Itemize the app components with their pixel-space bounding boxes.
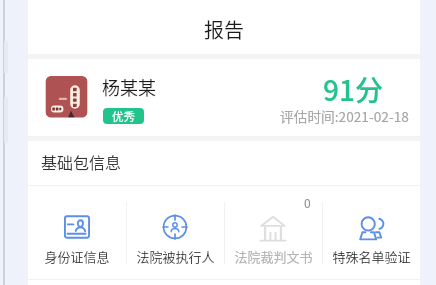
button[interactable]: 法院裁判文书: [224, 186, 322, 279]
staticText: 特殊名单验证: [332, 247, 411, 266]
staticText: 0: [304, 194, 311, 211]
staticText: 基础包信息: [41, 150, 122, 173]
staticText: 杨某某: [102, 74, 156, 100]
staticText: 91分: [323, 69, 383, 110]
staticText: 法院被执行人: [136, 247, 215, 266]
staticText: 法院裁判文书: [234, 247, 313, 266]
staticText: 优秀: [112, 108, 135, 124]
staticText: 报告: [204, 15, 244, 44]
button[interactable]: 特殊名单验证: [322, 186, 420, 279]
staticText: 评估时间:2021-02-18: [280, 106, 409, 126]
button[interactable]: 法院被执行人: [126, 186, 224, 279]
button[interactable]: 身份证信息: [28, 186, 126, 279]
staticText: 身份证信息: [44, 247, 110, 266]
